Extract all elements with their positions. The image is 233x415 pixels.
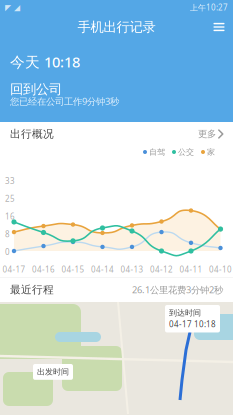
staticText: 04-10	[209, 264, 232, 275]
staticText: 出发时间	[37, 367, 69, 377]
staticText: 04-17 10:18	[169, 319, 216, 329]
button[interactable]: Menu	[205, 15, 233, 39]
staticText: ◤ ◢	[5, 3, 20, 12]
staticText: 04-17	[2, 264, 25, 275]
button[interactable]: 更多	[198, 125, 223, 143]
staticText: 到达时间	[169, 308, 201, 318]
staticText: 26.1公里花费3分钟2秒	[132, 284, 223, 296]
staticText: 今天 10:18	[10, 52, 80, 71]
staticText: 最近行程	[10, 283, 54, 296]
staticText: 出行概况	[10, 127, 54, 140]
staticText: 8	[5, 229, 10, 239]
staticText: 回到公司	[10, 81, 62, 97]
staticText: 0	[5, 246, 10, 257]
staticText: 04-16	[32, 264, 55, 275]
staticText: 16	[5, 211, 15, 222]
staticText: 更多	[198, 128, 216, 140]
staticText: 04-14	[91, 264, 114, 275]
staticText: 33	[5, 175, 15, 186]
staticText: 手机出行记录	[77, 19, 155, 35]
staticText: 自驾	[149, 147, 165, 157]
staticText: 25	[5, 193, 15, 204]
staticText: 04-13	[120, 264, 143, 275]
staticText: 家	[207, 147, 215, 157]
staticText: 您已经在公司工作9分钟3秒	[10, 95, 119, 107]
staticText: 04-11	[179, 264, 202, 275]
staticText: 04-12	[150, 264, 173, 275]
staticText: 04-15	[61, 264, 84, 275]
staticText: 上午10:27	[190, 2, 228, 13]
staticText: 公交	[178, 147, 194, 157]
